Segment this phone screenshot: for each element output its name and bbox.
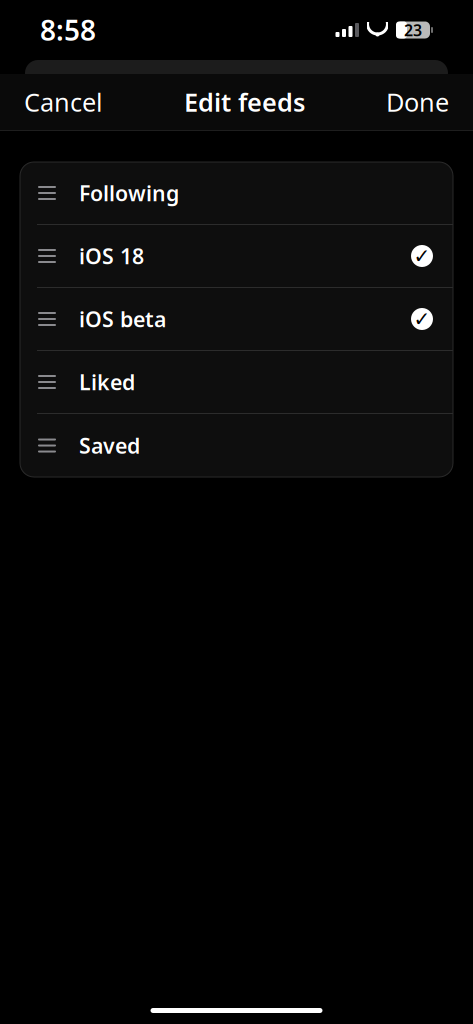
staticText: ✓ — [413, 308, 430, 330]
button[interactable]: Cancel — [20, 77, 107, 127]
button[interactable]: Done — [382, 77, 453, 127]
staticText: Edit feeds — [184, 85, 305, 119]
button[interactable]: Liked — [20, 351, 453, 414]
staticText: iOS beta — [79, 305, 166, 333]
button[interactable]: iOS beta — [20, 288, 453, 351]
button[interactable]: Following — [20, 162, 453, 225]
button[interactable]: Saved — [20, 414, 453, 477]
staticText: 23 — [404, 19, 422, 41]
staticText: Cancel — [24, 85, 103, 119]
staticText: Liked — [79, 368, 135, 396]
staticText: ✓ — [413, 245, 430, 267]
staticText: 8:58 — [40, 11, 96, 49]
staticText: Following — [79, 179, 179, 207]
staticText: iOS 18 — [79, 242, 144, 270]
staticText: Done — [386, 85, 449, 119]
button[interactable]: iOS 18 — [20, 225, 453, 288]
staticText: Saved — [79, 431, 140, 460]
